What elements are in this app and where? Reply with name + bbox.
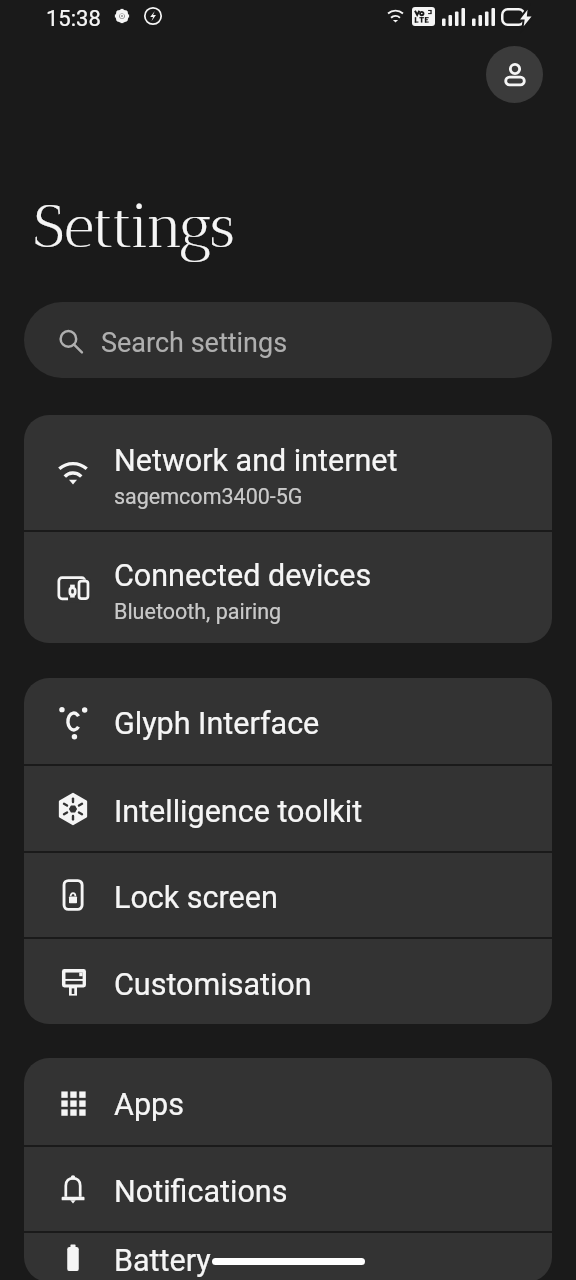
staticText: Connected devices xyxy=(114,558,372,594)
button[interactable]: Notifications xyxy=(24,1147,552,1231)
button[interactable]: Glyph Interface xyxy=(24,678,552,764)
staticText: Notifications xyxy=(114,1174,288,1210)
button[interactable]: Connected devices xyxy=(24,532,552,643)
staticText: Bluetooth, pairing xyxy=(114,599,282,624)
staticText: Intelligence toolkit xyxy=(114,794,363,830)
button[interactable]: Battery xyxy=(24,1233,552,1280)
staticText: Apps xyxy=(114,1087,184,1123)
button[interactable]: Customisation xyxy=(24,939,552,1024)
staticText: Glyph Interface xyxy=(114,706,320,742)
staticText: Battery xyxy=(114,1243,211,1279)
staticText: Settings xyxy=(33,192,235,262)
button[interactable]: Intelligence toolkit xyxy=(24,766,552,851)
staticText: Lock screen xyxy=(114,880,278,916)
staticText: Customisation xyxy=(114,967,312,1003)
staticText: sagemcom3400-5G xyxy=(114,484,303,509)
button[interactable]: Search settings xyxy=(24,302,552,378)
staticText: Search settings xyxy=(101,327,288,359)
staticText: Network and internet xyxy=(114,443,398,479)
button[interactable]: Apps xyxy=(24,1058,552,1145)
button[interactable]: Lock screen xyxy=(24,853,552,937)
button[interactable]: Network and internet xyxy=(24,415,552,530)
staticText: 15:38 xyxy=(46,6,101,32)
button[interactable]: Account xyxy=(486,46,543,103)
